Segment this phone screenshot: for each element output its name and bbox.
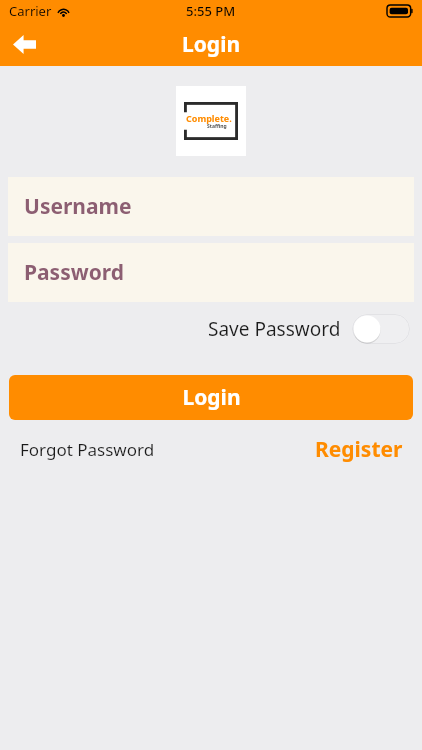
- button[interactable]: Back: [0, 22, 48, 66]
- button[interactable]: Password: [8, 243, 414, 302]
- staticText: Login: [182, 30, 241, 59]
- staticText: 5:55 PM: [186, 2, 236, 20]
- staticText: Staffing: [207, 123, 227, 130]
- button[interactable]: Save Password toggle: [352, 314, 410, 344]
- staticText: Complete.: [186, 112, 232, 124]
- button[interactable]: Register: [315, 435, 403, 464]
- button[interactable]: Login: [9, 375, 413, 420]
- staticText: Login: [182, 383, 241, 412]
- button[interactable]: Forgot Password: [20, 438, 155, 461]
- staticText: Username: [24, 192, 132, 221]
- button[interactable]: Username: [8, 177, 414, 236]
- staticText: Save Password: [208, 316, 341, 342]
- staticText: Register: [315, 435, 403, 464]
- staticText: Password: [24, 258, 125, 287]
- staticText: Forgot Password: [20, 438, 155, 461]
- staticText: Carrier: [9, 2, 52, 20]
